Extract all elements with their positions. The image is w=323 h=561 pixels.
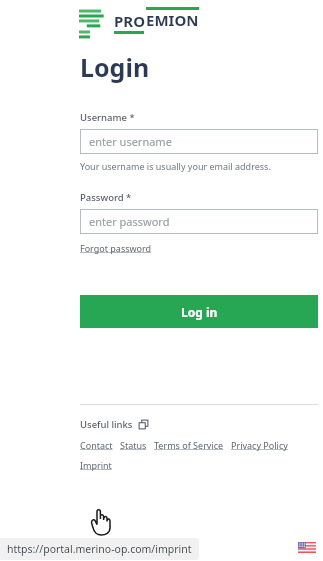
button[interactable]: Contact — [80, 439, 113, 451]
button[interactable]: Language: English (US) — [298, 542, 316, 553]
staticText: Login — [80, 50, 150, 84]
staticText: Log in — [181, 304, 218, 320]
staticText: Your username is usually your email addr… — [80, 160, 271, 172]
staticText: Contact — [80, 439, 113, 451]
staticText: Useful links — [80, 418, 133, 431]
staticText: Password * — [80, 191, 132, 204]
staticText: Terms of Service — [154, 439, 224, 451]
button[interactable]: Forgot password — [80, 242, 152, 254]
button[interactable]: Open useful links — [138, 419, 149, 430]
staticText: PRO — [114, 11, 146, 31]
button[interactable]: Log in — [80, 295, 318, 328]
staticText: Status — [120, 439, 147, 451]
staticText: EMION — [146, 10, 199, 30]
staticText: Username * — [80, 111, 135, 124]
staticText: https://portal.merino-op.com/imprint — [7, 542, 192, 556]
button[interactable]: enter password — [80, 209, 318, 234]
button[interactable]: enter username — [80, 129, 318, 154]
staticText: Imprint — [80, 459, 112, 471]
button[interactable]: Imprint — [80, 459, 112, 471]
staticText: Privacy Policy — [231, 439, 288, 451]
button[interactable]: Privacy Policy — [231, 439, 288, 451]
staticText: enter password — [89, 214, 170, 229]
button[interactable]: Status — [120, 439, 147, 451]
button[interactable]: Terms of Service — [154, 439, 224, 451]
staticText: Forgot password — [80, 242, 152, 254]
staticText: enter username — [89, 134, 172, 149]
button[interactable]: Proemion logo — [79, 7, 199, 34]
